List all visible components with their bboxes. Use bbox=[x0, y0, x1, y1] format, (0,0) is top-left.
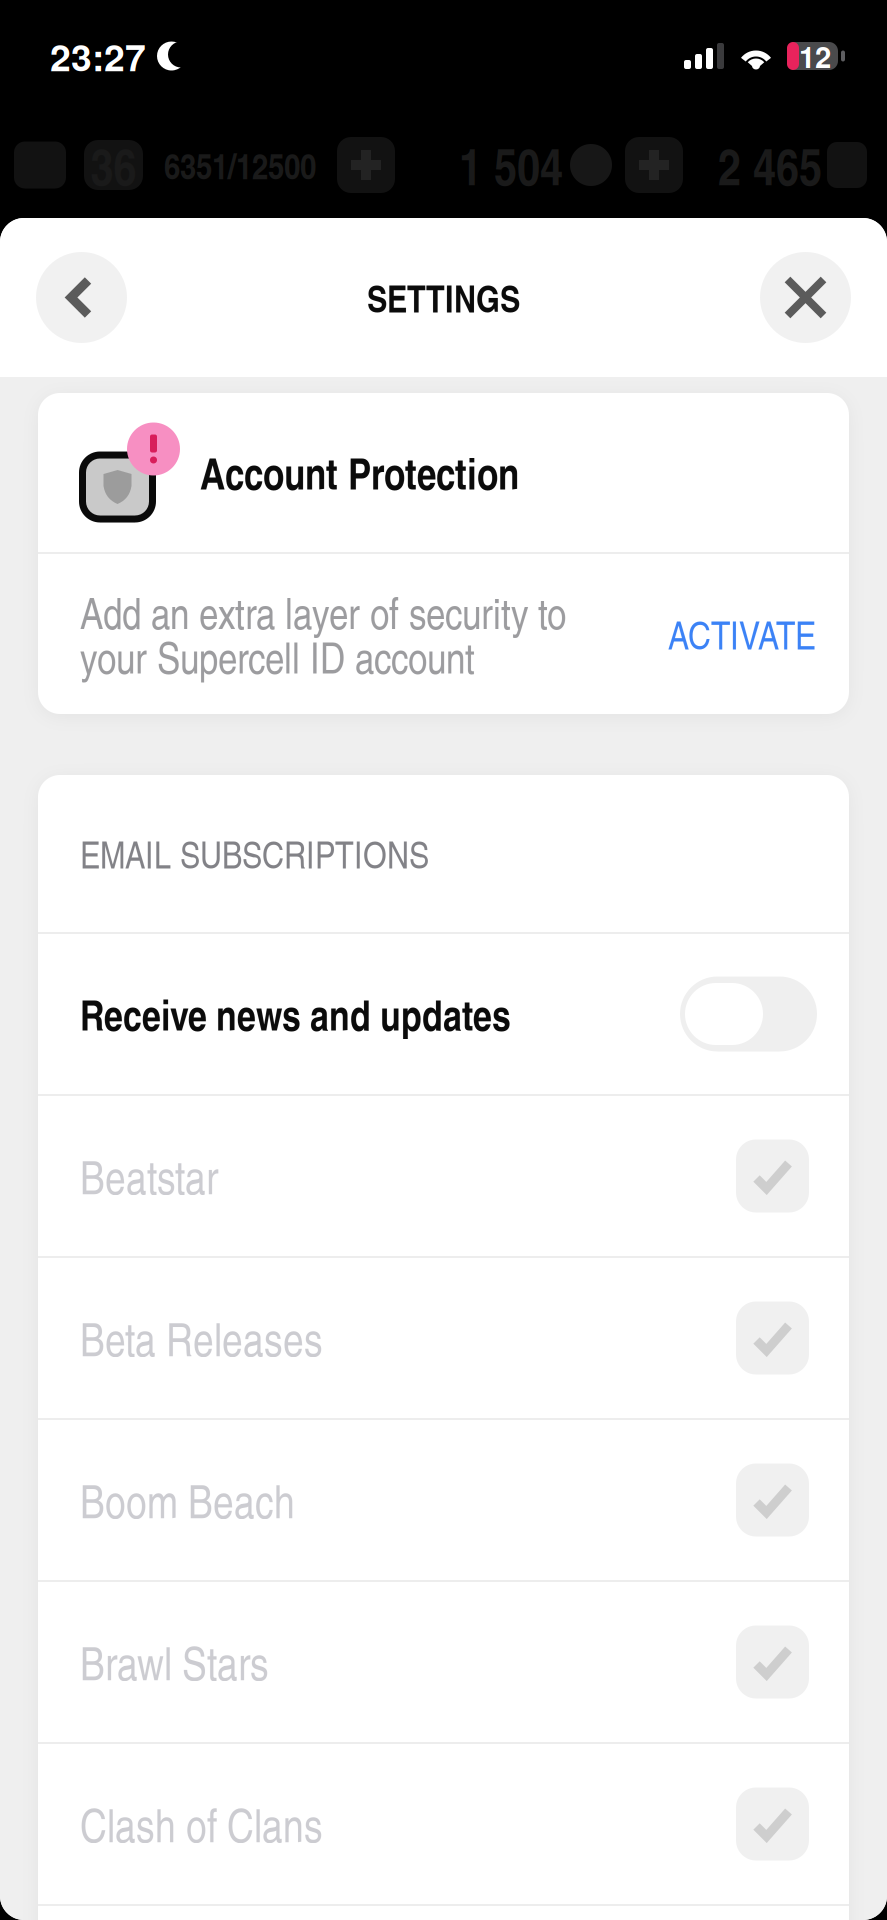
button[interactable]: ACTIVATE bbox=[656, 591, 828, 676]
staticText: 1 504 bbox=[459, 129, 563, 201]
staticText: Beta Releases bbox=[80, 1307, 323, 1369]
staticText: Receive news and updates bbox=[80, 985, 511, 1043]
staticText: EMAIL SUBSCRIPTIONS bbox=[80, 828, 429, 879]
staticText: 6351/12500 bbox=[164, 140, 316, 190]
button[interactable]: Close bbox=[760, 252, 851, 343]
button[interactable]: Boom Beach bbox=[38, 1420, 849, 1580]
button[interactable]: Beta Releases bbox=[38, 1258, 849, 1418]
staticText: Add an extra layer of security to your S… bbox=[80, 582, 566, 685]
button[interactable]: Brawl Stars bbox=[38, 1582, 849, 1742]
staticText: Beatstar bbox=[80, 1145, 218, 1207]
button[interactable]: Clash of Clans bbox=[38, 1744, 849, 1904]
staticText: ACTIVATE bbox=[668, 607, 816, 660]
staticText: 12 bbox=[799, 35, 831, 77]
button[interactable]: Back bbox=[36, 252, 127, 343]
staticText: 36 bbox=[90, 129, 136, 201]
staticText: 23:27 bbox=[50, 29, 146, 83]
staticText: Brawl Stars bbox=[80, 1631, 269, 1693]
button[interactable]: Beatstar bbox=[38, 1096, 849, 1256]
staticText: Account Protection bbox=[200, 442, 519, 503]
staticText: 2 465 bbox=[718, 129, 822, 201]
staticText: Clash of Clans bbox=[80, 1793, 323, 1855]
button[interactable]: Receive news and updates bbox=[38, 934, 849, 1094]
staticText: Boom Beach bbox=[80, 1469, 295, 1531]
staticText: SETTINGS bbox=[367, 271, 520, 324]
